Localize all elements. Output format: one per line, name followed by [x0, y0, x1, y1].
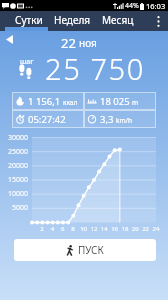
staticText: 44%	[125, 1, 139, 11]
staticText: ккал	[63, 98, 78, 107]
staticText: шаг	[20, 57, 34, 67]
button[interactable]: 1 156,1	[12, 92, 84, 110]
button[interactable]: 3,3	[84, 110, 156, 128]
button[interactable]: 18 025	[84, 92, 156, 110]
staticText: 22	[61, 34, 76, 51]
button[interactable]: More options	[150, 11, 166, 31]
staticText: ПУСК	[78, 243, 104, 257]
button[interactable]: Месяц	[96, 11, 140, 31]
staticText: Неделя	[54, 13, 91, 27]
staticText: 1 156,1	[28, 95, 61, 108]
staticText: Месяц	[102, 13, 134, 27]
button[interactable]: Неделя	[50, 11, 94, 31]
staticText: ноя	[79, 36, 97, 50]
staticText: Сутки	[15, 13, 43, 27]
button[interactable]: Сутки	[7, 11, 51, 31]
staticText: 25 750	[45, 49, 145, 88]
staticText: 05:27:42	[28, 113, 66, 126]
staticText: 3,3	[100, 113, 114, 126]
button[interactable]: Previous day	[2, 32, 17, 47]
button[interactable]: ПУСК	[14, 239, 156, 261]
staticText: m	[132, 98, 139, 107]
staticText: 18 025	[100, 95, 130, 108]
button[interactable]: 05:27:42	[12, 110, 84, 128]
staticText: 16:03	[146, 1, 166, 11]
staticText: km/h	[116, 116, 132, 125]
